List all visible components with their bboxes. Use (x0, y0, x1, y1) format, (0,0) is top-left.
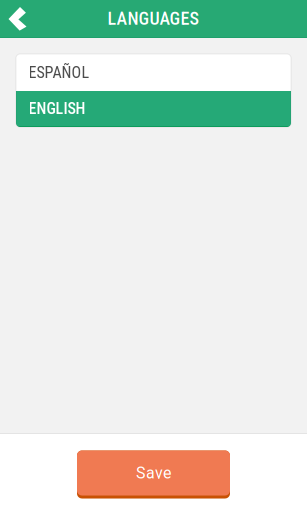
staticText: ESPAÑOL (28, 63, 89, 82)
button[interactable]: ESPAÑOL (16, 54, 291, 91)
staticText: LANGUAGES (107, 8, 199, 29)
staticText: Save (136, 464, 171, 482)
button[interactable]: Save (77, 447, 230, 498)
staticText: ENGLISH (28, 99, 85, 118)
button[interactable]: ENGLISH (16, 91, 291, 127)
button[interactable]: Back (0, 0, 42, 37)
